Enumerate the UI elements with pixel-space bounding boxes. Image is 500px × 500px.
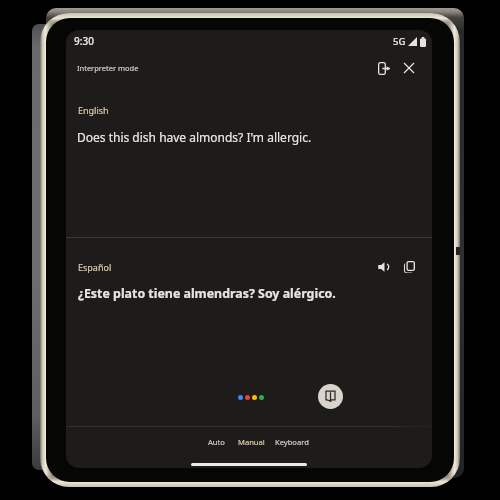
staticText: Auto [208, 437, 225, 447]
staticText: 5G [393, 35, 406, 48]
button[interactable]: Move to outer screen [372, 56, 396, 80]
staticText: English [78, 104, 109, 116]
staticText: Does this dish have almonds? I'm allergi… [77, 129, 312, 145]
staticText: 9:30 [74, 34, 94, 48]
button[interactable]: Keyboard [270, 431, 314, 453]
button[interactable]: Play audio [372, 255, 396, 279]
staticText: ¿Este plato tiene almendras? Soy alérgic… [78, 285, 336, 302]
staticText: Español [78, 261, 112, 273]
staticText: Manual [238, 437, 265, 447]
button[interactable]: Manual [233, 431, 270, 453]
staticText: Interpreter mode [77, 63, 139, 73]
button[interactable]: Close [397, 56, 421, 80]
button[interactable]: Interpreter [318, 384, 343, 409]
staticText: Keyboard [275, 437, 309, 447]
button[interactable]: Auto [203, 431, 230, 453]
button[interactable]: Copy [397, 255, 421, 279]
